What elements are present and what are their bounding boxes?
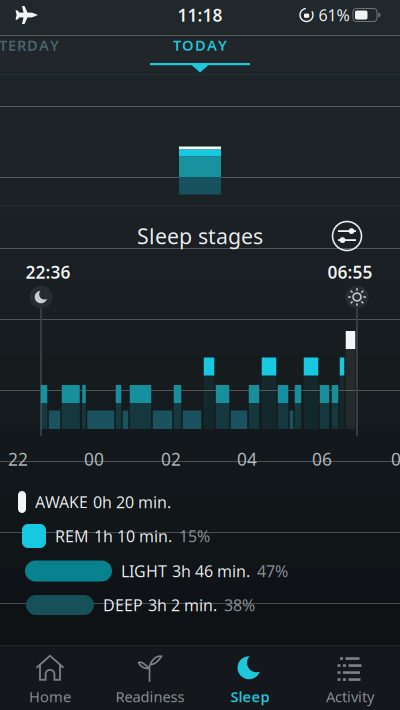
staticText: LIGHT (121, 560, 167, 582)
button[interactable]: Activity (300, 646, 400, 710)
staticText: 47% (257, 560, 288, 582)
staticText: Activity (326, 687, 374, 706)
staticText: 1h 10 min. (94, 525, 172, 547)
staticText: Sleep stages (137, 222, 263, 250)
staticText: 0h 20 min. (93, 491, 171, 513)
staticText: Sleep (230, 687, 269, 706)
button[interactable] (325, 214, 369, 258)
staticText: 06 (312, 447, 332, 470)
staticText: 15% (179, 525, 210, 547)
staticText: T O D A Y (173, 35, 227, 55)
button[interactable]: Y E S T E R D A Y (0, 27, 85, 63)
staticText: 61% (318, 4, 349, 26)
staticText: Home (29, 687, 71, 706)
staticText: 22 (8, 447, 28, 470)
staticText: 06:55 (327, 260, 372, 283)
staticText: 04 (237, 447, 257, 470)
staticText: 3h 2 min. (148, 594, 217, 616)
staticText: 02 (161, 447, 181, 470)
button[interactable]: Home (0, 646, 100, 710)
staticText: 22:36 (25, 260, 70, 283)
staticText: 00 (84, 447, 104, 470)
staticText: 38% (224, 594, 255, 616)
staticText: Y E S T E R D A Y (0, 35, 59, 55)
button[interactable]: Readiness (100, 646, 200, 710)
staticText: Readiness (115, 687, 184, 706)
staticText: DEEP (103, 594, 143, 616)
staticText: 08 (391, 447, 400, 470)
button[interactable]: T O D A Y (135, 27, 265, 63)
staticText: 11:18 (177, 3, 222, 26)
button[interactable]: Sleep (200, 646, 300, 710)
staticText: AWAKE (35, 491, 88, 513)
staticText: REM (55, 525, 89, 547)
staticText: 3h 46 min. (172, 560, 250, 582)
